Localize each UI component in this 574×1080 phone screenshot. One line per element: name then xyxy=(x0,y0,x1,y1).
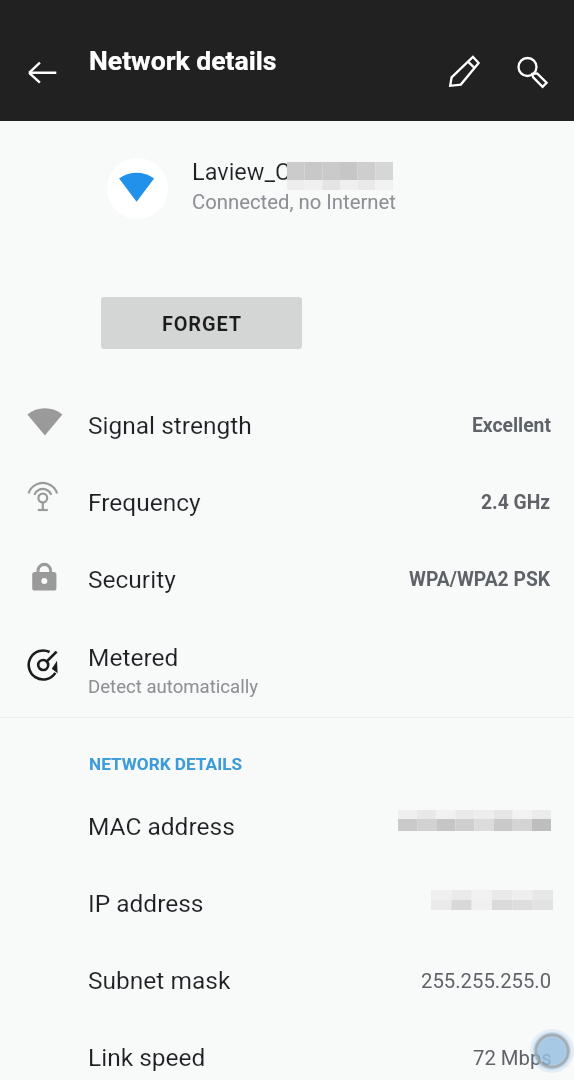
staticText: Excellent xyxy=(472,414,551,437)
staticText: Laview_C xyxy=(192,158,291,186)
button[interactable]: FORGET xyxy=(101,297,302,349)
button[interactable]: Laview_C xyxy=(0,145,574,231)
staticText: Metered xyxy=(88,643,179,672)
button[interactable]: MAC address xyxy=(0,788,574,865)
staticText: 255.255.255.0 xyxy=(421,969,552,993)
staticText: 72 Mbps xyxy=(473,1046,552,1070)
staticText: Detect automatically xyxy=(88,676,259,698)
staticText: Subnet mask xyxy=(88,966,231,995)
staticText: Link speed xyxy=(88,1043,206,1072)
staticText: Security xyxy=(88,565,176,594)
staticText: MAC address xyxy=(88,812,235,841)
staticText: IP address xyxy=(88,889,204,918)
button[interactable]: Edit xyxy=(440,47,489,96)
button[interactable]: IP address xyxy=(0,865,574,942)
button[interactable]: Frequency xyxy=(0,464,574,541)
staticText: FORGET xyxy=(162,312,242,335)
staticText: Signal strength xyxy=(88,411,252,440)
staticText: Connected, no Internet xyxy=(192,190,396,214)
staticText: Network details xyxy=(89,45,277,76)
staticText: 2.4 GHz xyxy=(481,491,551,514)
button[interactable]: Subnet mask xyxy=(0,942,574,1019)
staticText: WPA/WPA2 PSK xyxy=(409,568,551,591)
staticText: Frequency xyxy=(88,488,201,517)
button[interactable]: Signal strength xyxy=(0,387,574,464)
button[interactable]: Security xyxy=(0,541,574,618)
button[interactable]: Back xyxy=(18,48,67,97)
button[interactable]: Link speed xyxy=(0,1019,574,1080)
staticText: NETWORK DETAILS xyxy=(89,754,243,774)
button[interactable]: Search xyxy=(508,48,557,97)
button[interactable]: Metered xyxy=(0,618,574,695)
